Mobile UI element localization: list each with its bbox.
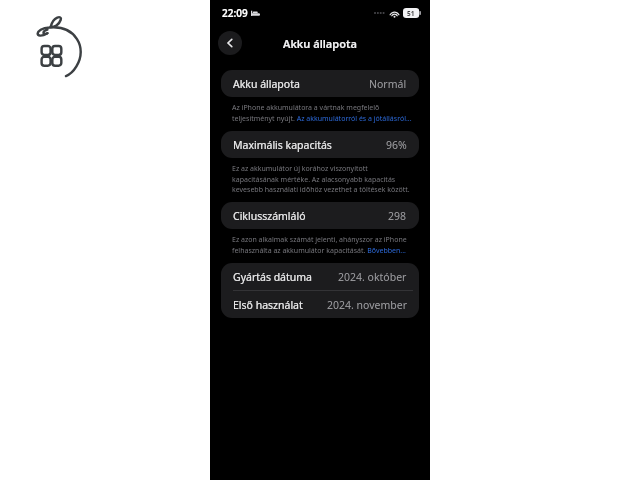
staticText: Ez az akkumulátor új korához viszonyítot… bbox=[232, 164, 410, 194]
staticText: 2024. október bbox=[338, 270, 407, 284]
button[interactable]: Maximális kapacitás bbox=[221, 131, 419, 158]
staticText: Ciklusszámláló bbox=[233, 209, 306, 223]
staticText: Gyártás dátuma bbox=[233, 270, 313, 284]
staticText: 298 bbox=[388, 209, 407, 223]
staticText: Akku állapota bbox=[283, 36, 357, 51]
button[interactable]: Ciklusszámláló bbox=[221, 202, 419, 229]
staticText: 2024. november bbox=[327, 298, 407, 312]
staticText: Maximális kapacitás bbox=[233, 138, 332, 152]
staticText: Első használat bbox=[233, 298, 303, 312]
staticText: 96% bbox=[386, 138, 407, 152]
button[interactable]: Back bbox=[218, 31, 242, 55]
button[interactable]: Akku állapota bbox=[221, 70, 419, 97]
staticText: Akku állapota bbox=[233, 77, 300, 91]
staticText: Normál bbox=[369, 77, 407, 91]
button[interactable]: Első használat bbox=[221, 291, 419, 318]
staticText: Az iPhone akkumulátora a vártnak megfele… bbox=[232, 103, 412, 123]
staticText: Ez azon alkalmak számát jelenti, ahánysz… bbox=[232, 235, 407, 255]
staticText: 51 bbox=[407, 9, 415, 18]
button[interactable]: Gyártás dátuma bbox=[221, 263, 419, 290]
staticText: 22:09 bbox=[222, 6, 248, 20]
